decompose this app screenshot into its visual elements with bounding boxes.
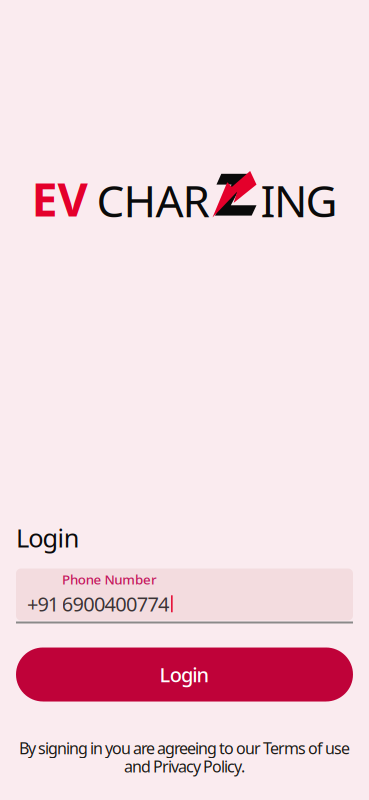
staticText: CHAR bbox=[96, 171, 209, 229]
staticText: 6900400774 bbox=[62, 590, 169, 617]
staticText: and Privacy Policy. bbox=[124, 756, 245, 777]
staticText: ING bbox=[260, 171, 337, 229]
staticText: By signing in you are agreeing to our Te… bbox=[19, 737, 350, 759]
button[interactable]: Login bbox=[16, 647, 353, 701]
staticText: Phone Number bbox=[62, 570, 157, 588]
staticText: Login bbox=[160, 661, 209, 688]
staticText: Login bbox=[16, 521, 80, 554]
staticText: +91 bbox=[27, 590, 59, 617]
staticText: EV bbox=[31, 167, 87, 229]
